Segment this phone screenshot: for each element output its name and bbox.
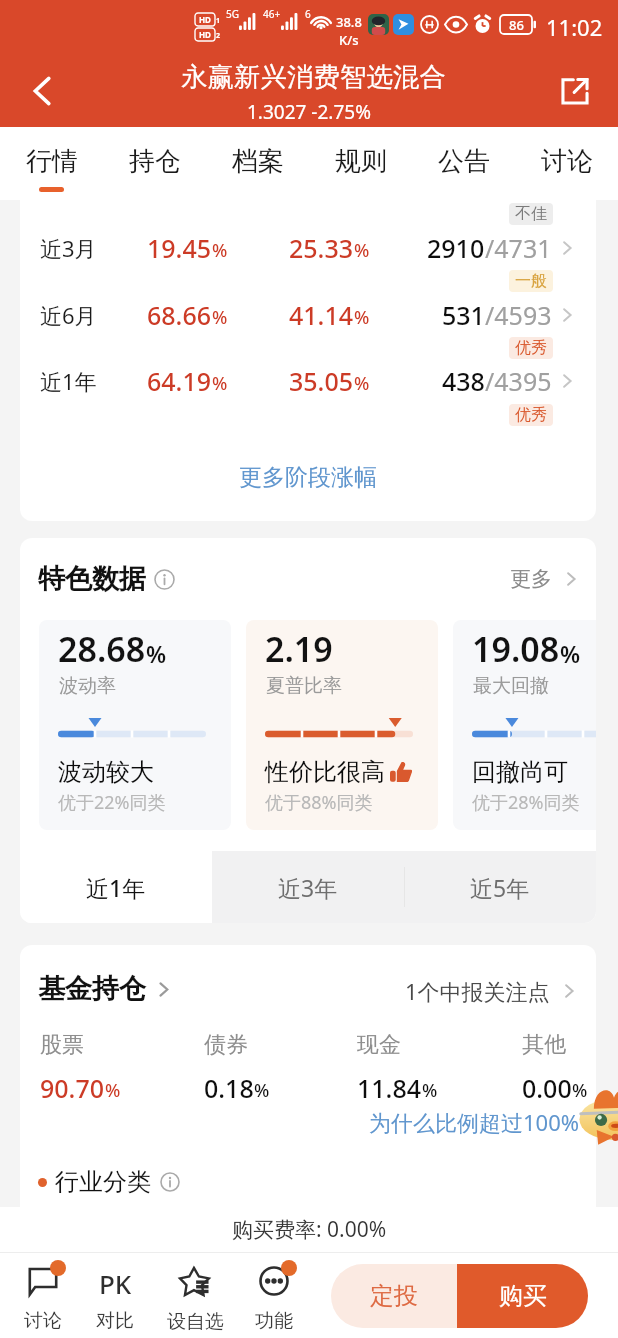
staticText: 更多 — [510, 566, 552, 592]
staticText: 购买 — [499, 1281, 547, 1311]
staticText: 持仓 — [129, 145, 181, 178]
staticText: 68.66 — [147, 298, 212, 332]
staticText: 优于88%同类 — [265, 790, 373, 815]
staticText: 讨论 — [541, 145, 593, 178]
button[interactable]: 更多 — [510, 566, 580, 592]
staticText: 优秀 — [515, 405, 547, 425]
staticText: % — [212, 305, 228, 330]
button[interactable]: 设自选 — [160, 1266, 230, 1338]
button[interactable]: 返回 — [16, 65, 68, 117]
button[interactable]: 定投 — [331, 1264, 457, 1328]
staticText: 近1年 — [40, 366, 97, 396]
staticText: 近1年 — [86, 872, 146, 903]
staticText: % — [105, 1078, 121, 1103]
staticText: 设自选 — [167, 1310, 224, 1334]
button[interactable]: 近1年 — [20, 348, 596, 414]
button[interactable]: 28.68 — [39, 620, 231, 830]
staticText: 购买费率: 0.00% — [232, 1215, 387, 1244]
staticText: K/s — [339, 31, 359, 49]
button[interactable]: 2.19 — [246, 620, 438, 830]
staticText: % — [354, 371, 370, 396]
staticText: 1个中报关注点 — [405, 976, 550, 1006]
button[interactable]: 持仓 — [103, 127, 206, 200]
button[interactable]: 购买 — [457, 1264, 588, 1328]
staticText: 2.19 — [265, 626, 333, 672]
button[interactable]: 近6月 — [20, 282, 596, 348]
staticText: 0.18 — [204, 1071, 254, 1105]
staticText: 38.8 — [336, 13, 362, 31]
staticText: 波动率 — [59, 674, 116, 698]
button[interactable]: 更多阶段涨幅 — [20, 431, 596, 521]
button[interactable]: 基金持仓 — [38, 972, 173, 1006]
staticText: 公告 — [438, 145, 490, 178]
staticText: 回撤尚可 — [472, 757, 568, 787]
button[interactable]: 近5年 — [404, 851, 596, 923]
staticText: 行业分类 — [55, 1167, 151, 1197]
staticText: 46+ — [263, 7, 281, 21]
staticText: % — [422, 1078, 438, 1103]
button[interactable]: PK — [80, 1266, 150, 1338]
staticText: 11.84 — [357, 1071, 422, 1105]
staticText: % — [146, 638, 167, 669]
button[interactable]: 行情 — [0, 127, 103, 200]
button[interactable]: 近3年 — [212, 851, 404, 923]
staticText: 近5年 — [470, 872, 530, 903]
staticText: 优于22%同类 — [58, 790, 166, 815]
staticText: 档案 — [232, 145, 284, 178]
staticText: 更多阶段涨幅 — [239, 463, 377, 492]
button[interactable]: 公告 — [412, 127, 515, 200]
staticText: 其他 — [522, 1031, 566, 1059]
staticText: 基金持仓 — [38, 972, 146, 1006]
staticText: 25.33 — [289, 231, 354, 265]
staticText: 2910 — [427, 231, 485, 265]
staticText: % — [572, 1078, 588, 1103]
staticText: 5G — [226, 7, 239, 21]
button[interactable]: 19.08 — [453, 620, 596, 830]
staticText: 最大回撤 — [473, 674, 549, 698]
staticText: HD — [199, 14, 211, 25]
button[interactable]: 近1年 — [20, 851, 212, 923]
staticText: 性价比很高 — [265, 757, 385, 787]
staticText: 行情 — [26, 145, 78, 178]
staticText: 1.3027 -2.75% — [247, 99, 371, 125]
button[interactable]: 近3月 — [20, 215, 596, 281]
staticText: 438 — [442, 364, 485, 398]
button[interactable]: 讨论 — [515, 127, 618, 200]
staticText: 19.45 — [147, 231, 212, 265]
staticText: % — [354, 305, 370, 330]
staticText: 1 — [216, 16, 221, 26]
button[interactable]: 功能 — [239, 1266, 309, 1338]
button[interactable]: 档案 — [206, 127, 309, 200]
staticText: 0.00 — [522, 1071, 572, 1105]
staticText: 近3月 — [40, 233, 97, 263]
staticText: 近6月 — [40, 300, 97, 330]
staticText: 64.19 — [147, 364, 212, 398]
staticText: 波动较大 — [58, 757, 154, 787]
staticText: 11:02 — [546, 12, 603, 42]
staticText: 近3年 — [278, 872, 338, 903]
staticText: % — [212, 371, 228, 396]
staticText: 35.05 — [289, 364, 354, 398]
staticText: 规则 — [335, 145, 387, 178]
staticText: HD — [199, 29, 211, 40]
staticText: /4593 — [485, 298, 552, 332]
button[interactable]: 为什么比例超过100% — [369, 1107, 580, 1137]
staticText: 债券 — [204, 1031, 248, 1059]
staticText: 2 — [216, 31, 221, 41]
staticText: 19.08 — [472, 626, 560, 672]
staticText: 功能 — [255, 1309, 293, 1333]
staticText: /4395 — [485, 364, 552, 398]
staticText: 夏普比率 — [266, 674, 342, 698]
staticText: PK — [99, 1266, 132, 1296]
staticText: 现金 — [357, 1031, 401, 1059]
staticText: 对比 — [96, 1309, 134, 1333]
staticText: 6 — [305, 7, 311, 21]
staticText: 特色数据 — [38, 562, 146, 596]
button[interactable]: 讨论 — [8, 1266, 78, 1338]
staticText: 优秀 — [515, 338, 547, 358]
staticText: 28.68 — [58, 626, 146, 672]
button[interactable]: 分享 — [549, 65, 601, 117]
button[interactable]: 规则 — [309, 127, 412, 200]
staticText: % — [212, 238, 228, 263]
button[interactable]: 1个中报关注点 — [405, 976, 578, 1006]
